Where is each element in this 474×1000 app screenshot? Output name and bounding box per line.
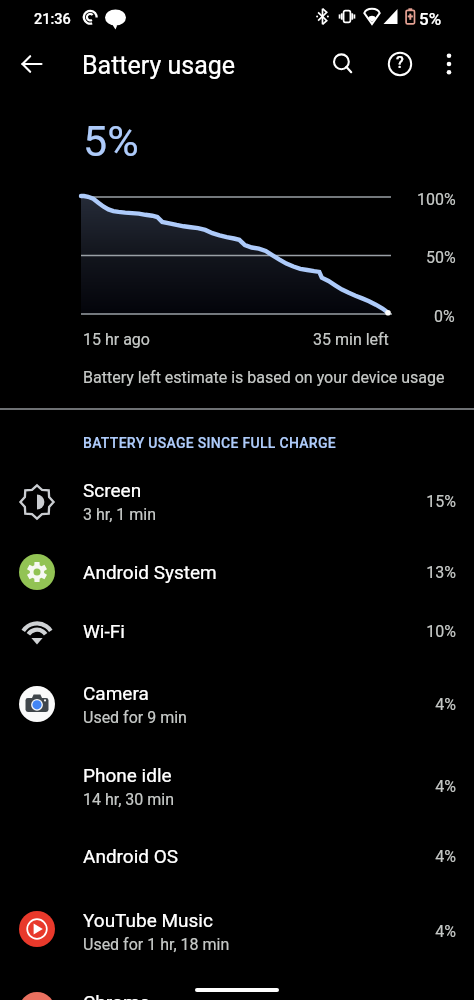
staticText: 15% [376, 492, 456, 511]
staticText: YouTube Music [83, 909, 213, 931]
staticText: Android System [83, 561, 217, 583]
staticText: 13% [376, 563, 456, 582]
staticText: Used for 1 hr, 18 min [83, 935, 230, 954]
staticText: Battery usage [82, 51, 236, 80]
staticText: Battery left estimate is based on your d… [83, 368, 445, 387]
staticText: Used for 9 min [83, 708, 187, 727]
staticText: 4% [376, 695, 456, 714]
staticText: 5% [419, 9, 442, 29]
button[interactable]: Search [319, 40, 367, 88]
staticText: Chrome [83, 991, 150, 1000]
staticText: Camera [83, 682, 149, 704]
staticText: Phone idle [83, 764, 172, 786]
staticText: BATTERY USAGE SINCE FULL CHARGE [83, 435, 337, 451]
staticText: 50% [426, 248, 456, 267]
button[interactable]: Back [8, 40, 56, 88]
staticText: 4% [376, 777, 456, 796]
staticText: 0% [434, 307, 455, 326]
button[interactable]: Help [376, 40, 424, 88]
staticText: 4% [376, 847, 456, 866]
button[interactable]: Camera [0, 665, 474, 747]
staticText: 14 hr, 30 min [83, 790, 175, 809]
staticText: Android OS [83, 845, 179, 867]
button[interactable]: Screen [0, 462, 474, 544]
button[interactable]: Phone idle [0, 747, 474, 829]
staticText: 10% [376, 622, 456, 641]
button[interactable]: Chrome [0, 974, 474, 1000]
staticText: 21:36 [34, 11, 71, 28]
staticText: 35 min left [313, 330, 389, 349]
staticText: Wi-Fi [83, 620, 125, 642]
button[interactable]: Android OS [0, 828, 474, 890]
button[interactable]: Wi-Fi [0, 603, 474, 665]
staticText: 15 hr ago [83, 330, 150, 349]
staticText: ? [376, 53, 424, 88]
button[interactable]: YouTube Music [0, 892, 474, 974]
staticText: 100% [417, 190, 456, 209]
staticText: 4% [376, 922, 456, 941]
staticText: 3 hr, 1 min [83, 505, 157, 524]
button[interactable]: More options [425, 40, 473, 88]
button[interactable]: Android System [0, 545, 474, 604]
staticText: 5% [83, 116, 139, 166]
staticText: Screen [83, 479, 142, 501]
